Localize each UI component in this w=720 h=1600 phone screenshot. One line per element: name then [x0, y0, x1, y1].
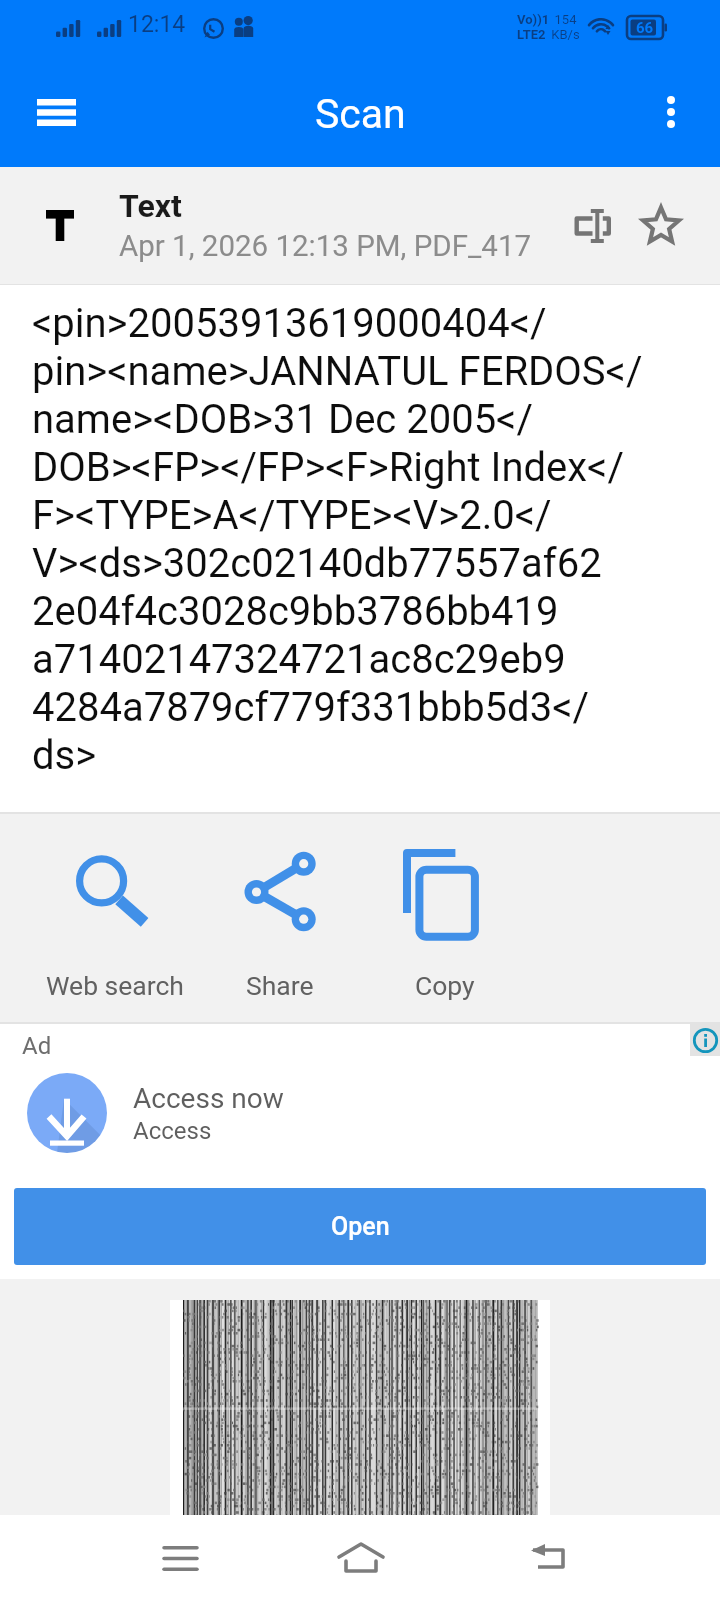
staticText: Copy: [415, 970, 475, 1001]
staticText: Scan: [315, 90, 406, 138]
button[interactable]: Copy: [362, 814, 527, 1022]
staticText: Ad: [22, 1032, 52, 1060]
staticText: Access now: [133, 1082, 284, 1115]
staticText: 154 KB/s: [551, 12, 580, 42]
button[interactable]: Recent apps: [130, 1518, 230, 1598]
staticText: Access: [133, 1117, 212, 1145]
button[interactable]: Home: [311, 1518, 411, 1598]
staticText: Apr 1, 2026 12:13 PM, PDF_417: [119, 229, 532, 264]
staticText: Open: [331, 1212, 390, 1241]
button[interactable]: Ad information: [690, 1024, 720, 1056]
staticText: Share: [246, 970, 314, 1001]
staticText: Web search: [46, 970, 184, 1001]
button[interactable]: More options: [635, 76, 707, 148]
staticText: 12:14: [128, 11, 186, 38]
button[interactable]: Rename: [556, 190, 628, 262]
button[interactable]: Open navigation menu: [16, 72, 96, 152]
staticText: <pin>20053913619000404</ pin><name>JANNA…: [32, 300, 643, 779]
staticText: Text: [119, 187, 182, 225]
button[interactable]: Share: [197, 814, 362, 1022]
button[interactable]: Open: [14, 1188, 706, 1265]
button[interactable]: Back: [498, 1518, 598, 1598]
button[interactable]: Add to favorites: [625, 190, 697, 262]
staticText: 66: [636, 19, 654, 37]
staticText: Vo))1: [517, 12, 550, 27]
button[interactable]: Web search: [32, 814, 197, 1022]
staticText: LTE2: [517, 27, 546, 42]
